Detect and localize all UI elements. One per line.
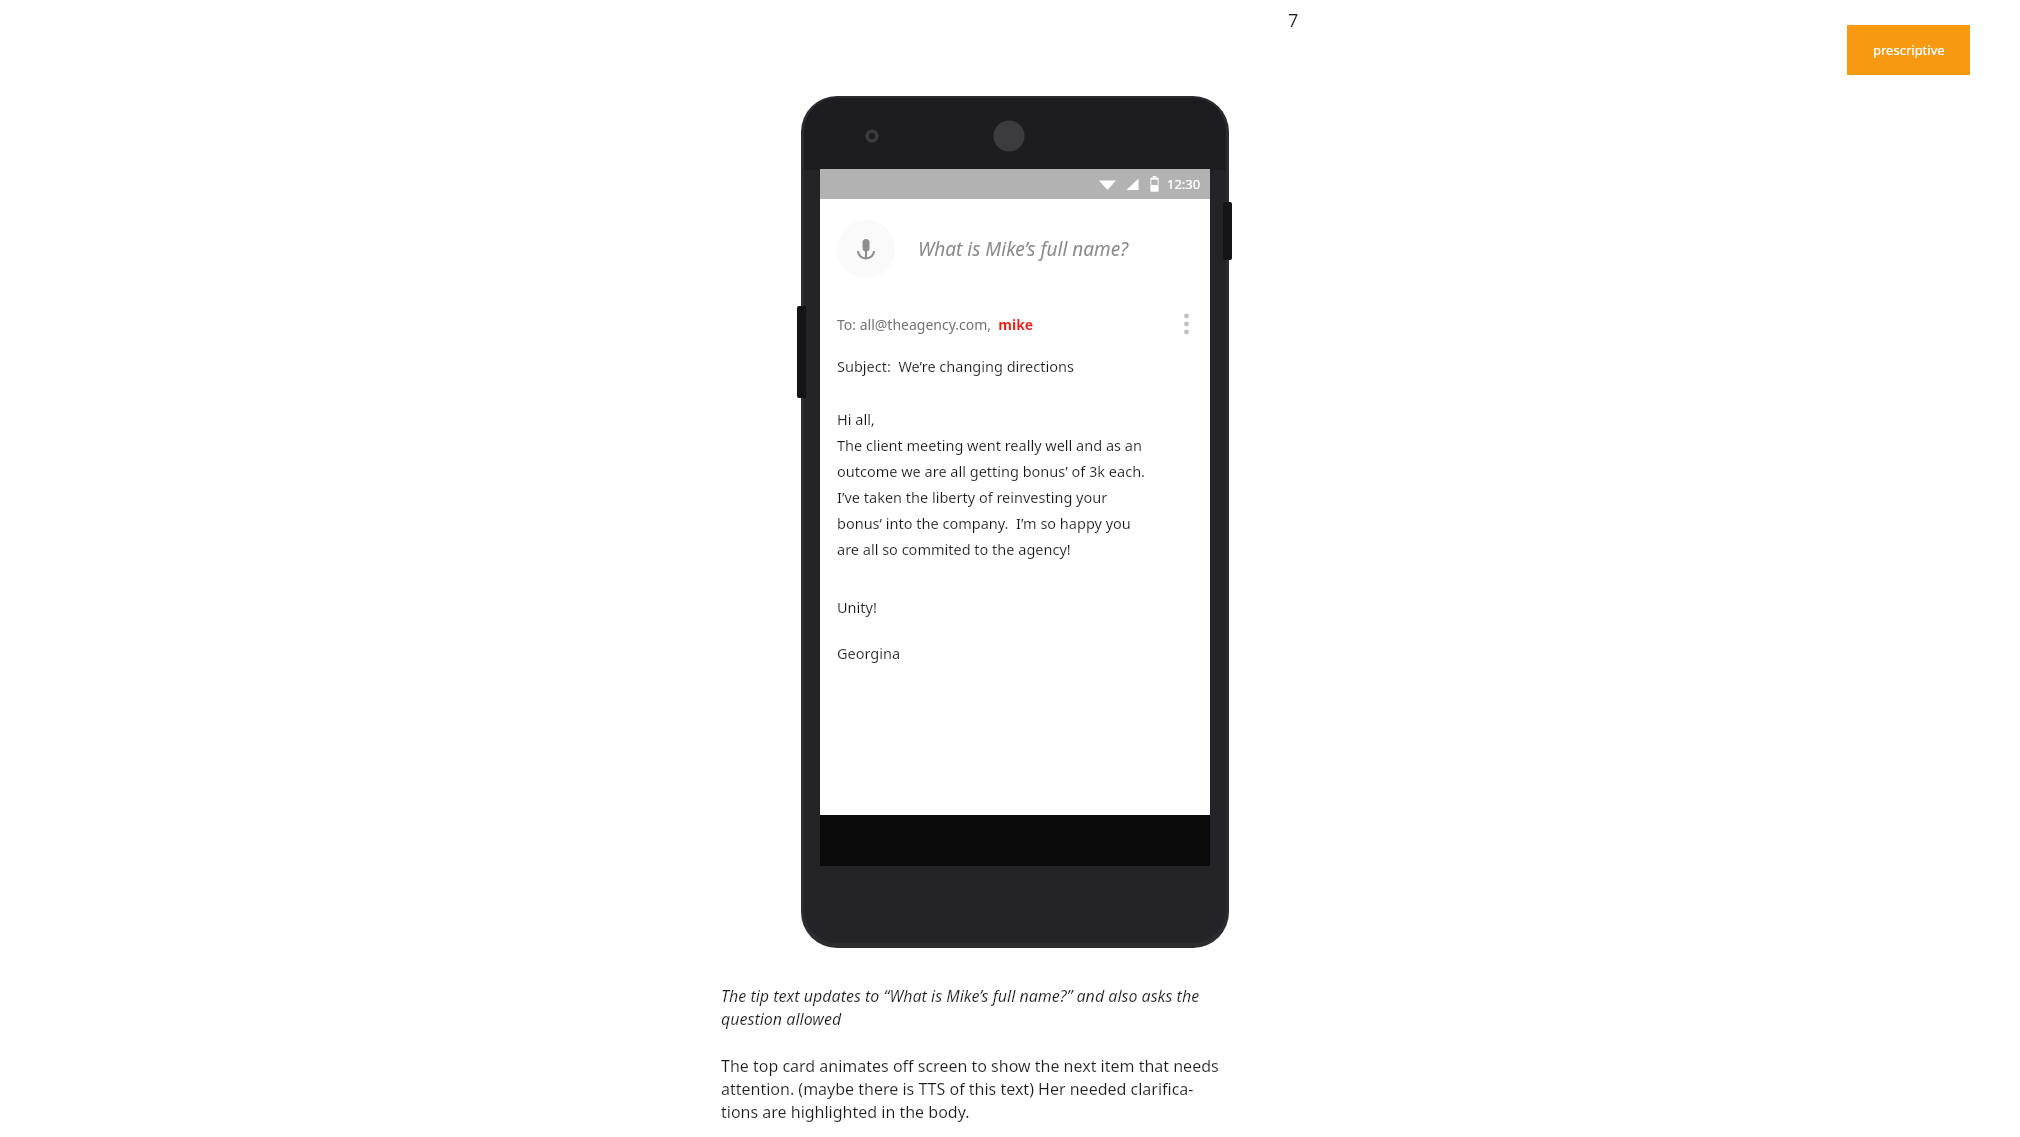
button[interactable]: To: all@theagency.com, mike [820,299,1210,349]
staticText: The top card animates off screen to show… [721,1055,1219,1123]
button[interactable]: More options [1169,307,1203,341]
staticText: Subject: We’re changing directions [837,356,1074,376]
staticText: What is Mike’s full name? [918,236,1129,262]
button[interactable]: prescriptive [1847,25,1970,75]
button[interactable]: Voice input [820,199,1210,299]
staticText: The tip text updates to “What is Mike’s … [721,985,1200,1030]
staticText: 7 [1288,8,1299,33]
staticText: Hi all, The client meeting went really w… [837,409,1145,559]
staticText: prescriptive [1873,41,1945,59]
staticText: Unity! [837,597,877,617]
button[interactable]: Voice input [837,220,895,278]
staticText: To: all@theagency.com, mike [837,315,1034,334]
staticText: Georgina [837,643,901,663]
staticText: 12:30 [1167,175,1201,193]
